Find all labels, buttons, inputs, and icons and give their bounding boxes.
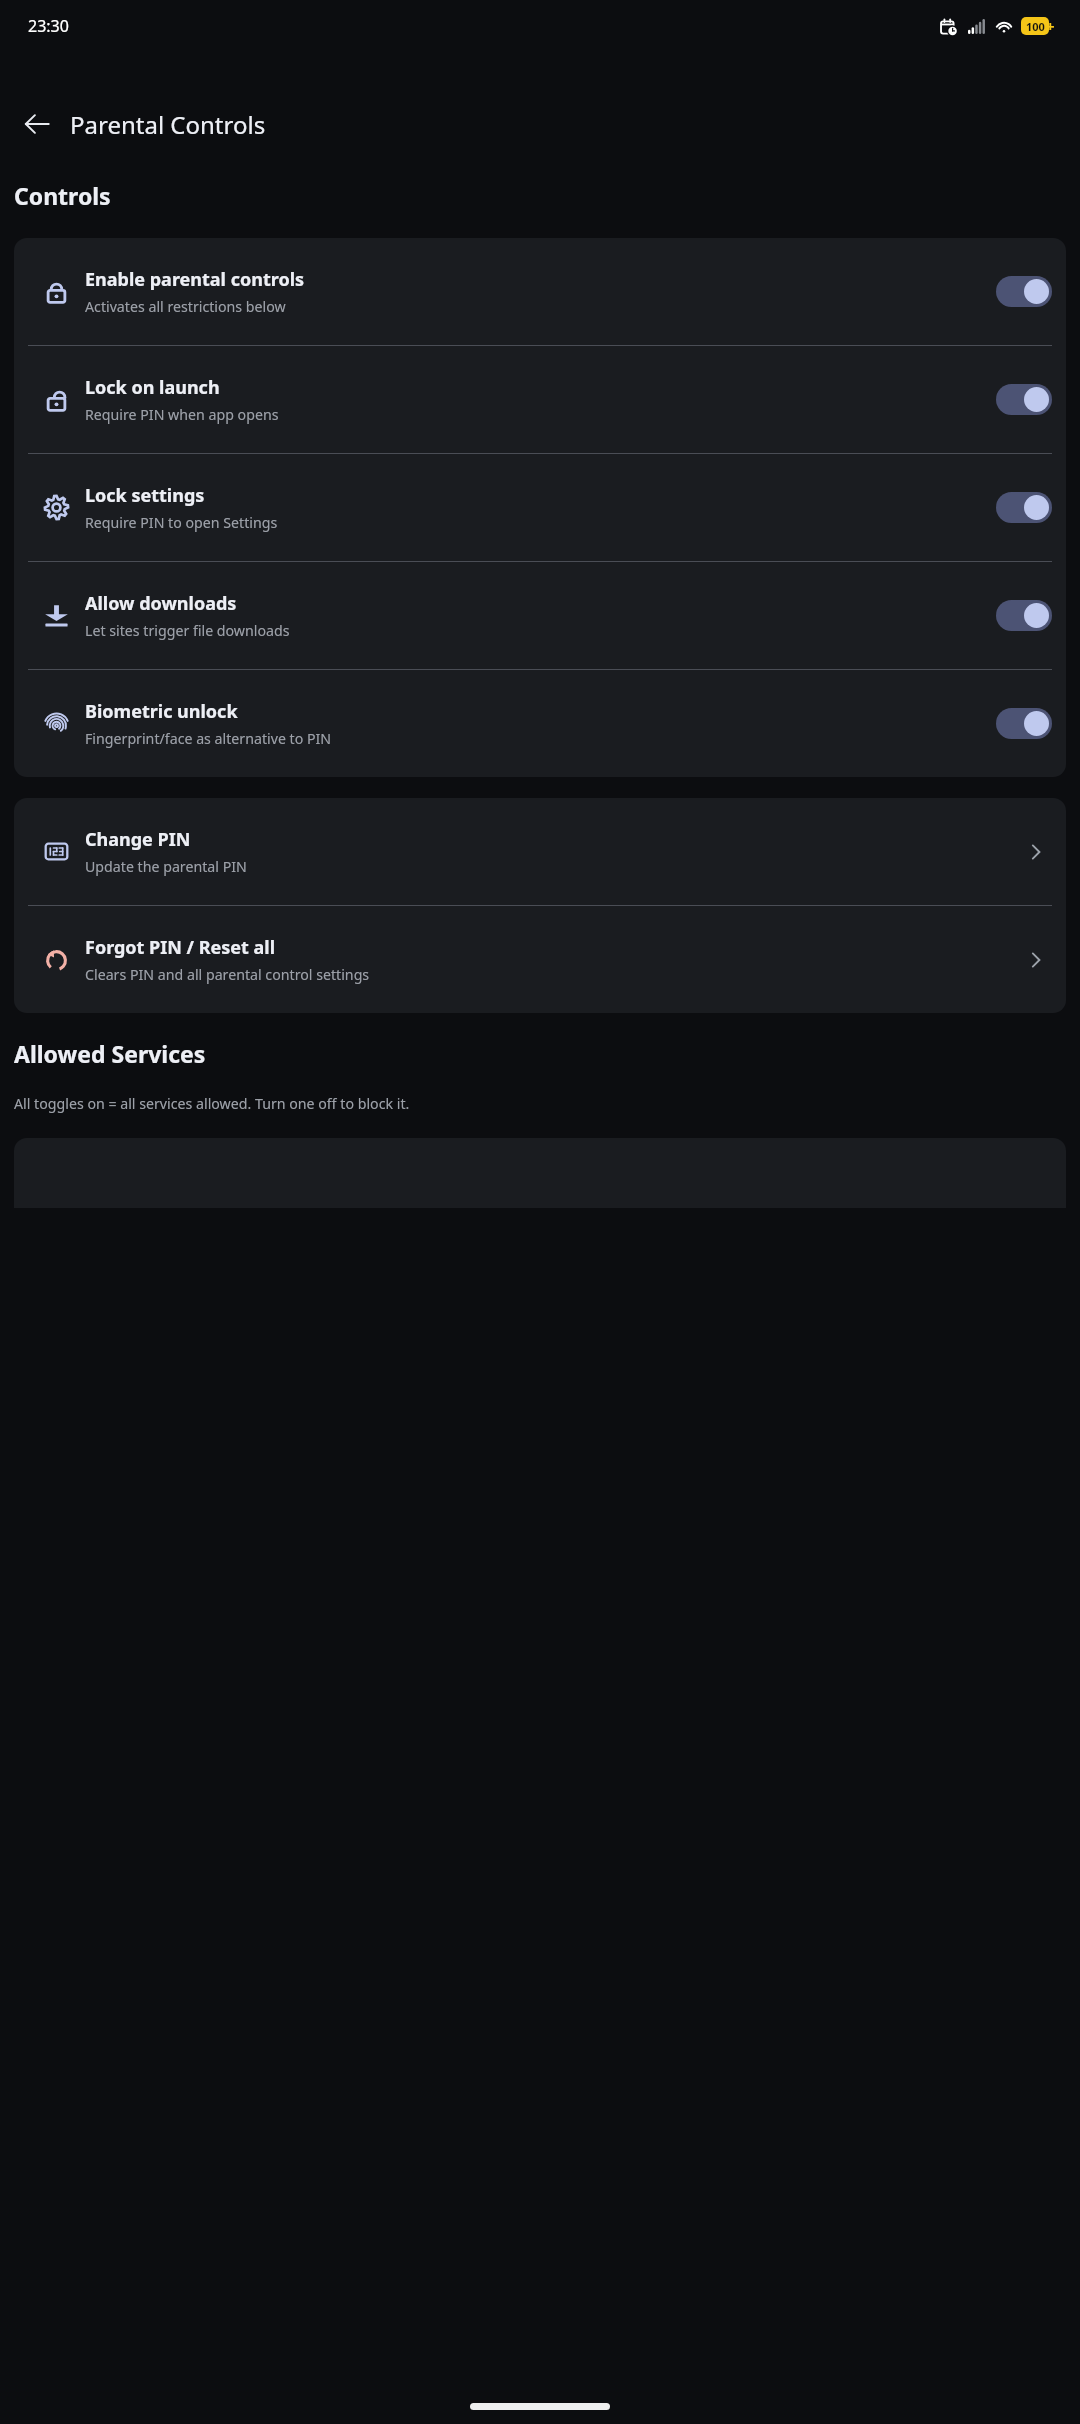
button[interactable]: Toggle Allow downloads [996, 600, 1052, 631]
staticText: Enable parental controls [85, 267, 305, 292]
staticText: Controls [14, 180, 111, 211]
button[interactable]: Change PIN [14, 798, 1066, 905]
staticText: Clears PIN and all parental control sett… [85, 965, 370, 984]
button[interactable]: Forgot PIN / Reset all [14, 906, 1066, 1013]
staticText: Lock settings [85, 483, 205, 508]
staticText: Parental Controls [70, 108, 266, 141]
button[interactable]: Biometric unlock [14, 670, 1066, 777]
button[interactable]: Toggle Enable parental controls [996, 276, 1052, 307]
staticText: + [1046, 16, 1055, 36]
staticText: Require PIN when app opens [85, 405, 279, 424]
staticText: Forgot PIN / Reset all [85, 935, 276, 960]
staticText: Update the parental PIN [85, 857, 247, 876]
staticText: Change PIN [85, 827, 191, 852]
staticText: Fingerprint/face as alternative to PIN [85, 729, 332, 748]
button[interactable]: Toggle Lock on launch [996, 384, 1052, 415]
staticText: Require PIN to open Settings [85, 513, 278, 532]
staticText: 23:30 [28, 15, 69, 37]
staticText: 100 [1026, 19, 1045, 34]
button[interactable]: Lock settings [14, 454, 1066, 561]
button[interactable]: Enable parental controls [14, 238, 1066, 345]
staticText: Biometric unlock [85, 699, 238, 724]
button[interactable]: Lock on launch [14, 346, 1066, 453]
staticText: Let sites trigger file downloads [85, 621, 290, 640]
button[interactable]: Toggle Lock settings [996, 492, 1052, 523]
staticText: Allow downloads [85, 591, 237, 616]
button[interactable]: Allow downloads [14, 562, 1066, 669]
staticText: Activates all restrictions below [85, 297, 286, 316]
button[interactable]: Back [12, 99, 62, 149]
staticText: Lock on launch [85, 375, 220, 400]
staticText: All toggles on = all services allowed. T… [14, 1094, 410, 1113]
button[interactable]: Toggle Biometric unlock [996, 708, 1052, 739]
staticText: Allowed Services [14, 1038, 206, 1069]
